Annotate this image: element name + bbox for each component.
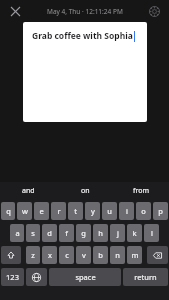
button[interactable]: Backspace [147, 246, 168, 264]
staticText: x [48, 250, 52, 260]
button[interactable]: return [123, 268, 168, 286]
staticText: t [74, 206, 77, 216]
button[interactable]: on [57, 182, 113, 200]
button[interactable]: Grab coffee with Sophia [23, 22, 147, 122]
button[interactable]: j [110, 224, 125, 242]
button[interactable]: n [110, 246, 125, 264]
staticText: and [22, 186, 35, 196]
button[interactable]: g [76, 224, 91, 242]
staticText: r [57, 206, 61, 216]
button[interactable]: e [34, 202, 49, 220]
button[interactable]: f [59, 224, 74, 242]
staticText: z [31, 250, 35, 260]
button[interactable]: from [113, 182, 169, 200]
button[interactable]: q [1, 202, 15, 220]
staticText: space [75, 272, 96, 282]
button[interactable]: Close [5, 1, 25, 21]
button[interactable]: z [26, 246, 40, 264]
button[interactable]: 123 [1, 268, 24, 286]
staticText: w [22, 206, 28, 216]
button[interactable]: v [76, 246, 91, 264]
button[interactable]: and [0, 182, 57, 200]
staticText: o [141, 206, 146, 216]
button[interactable]: i [119, 202, 134, 220]
button[interactable]: y [85, 202, 100, 220]
button[interactable]: w [17, 202, 32, 220]
button[interactable]: Shift [1, 246, 21, 264]
staticText: h [98, 228, 103, 238]
button[interactable]: l [144, 224, 159, 242]
staticText: on [81, 186, 90, 196]
staticText: n [115, 250, 120, 260]
staticText: 123 [6, 272, 19, 282]
staticText: e [39, 206, 44, 216]
button[interactable]: t [68, 202, 83, 220]
staticText: g [81, 228, 86, 238]
staticText: f [65, 228, 68, 238]
button[interactable]: d [42, 224, 57, 242]
button[interactable]: a [10, 224, 24, 242]
staticText: a [15, 228, 20, 238]
staticText: May 4, Thu · 12:11:24 PM [47, 7, 123, 16]
staticText: j [117, 228, 119, 238]
button[interactable]: r [51, 202, 66, 220]
staticText: k [132, 228, 137, 238]
staticText: v [82, 250, 86, 260]
button[interactable]: m [127, 246, 142, 264]
button[interactable]: u [102, 202, 117, 220]
staticText: m [131, 250, 139, 260]
button[interactable]: o [136, 202, 151, 220]
button[interactable]: k [127, 224, 142, 242]
staticText: return [134, 272, 157, 282]
button[interactable]: b [93, 246, 108, 264]
button[interactable]: x [42, 246, 57, 264]
staticText: u [107, 206, 112, 216]
button[interactable]: c [59, 246, 74, 264]
staticText: i [126, 206, 128, 216]
staticText: s [31, 228, 35, 238]
button[interactable]: h [93, 224, 108, 242]
staticText: d [47, 228, 52, 238]
staticText: p [158, 206, 163, 216]
button[interactable]: s [26, 224, 40, 242]
staticText: q [6, 206, 11, 216]
button[interactable]: Change keyboard [26, 268, 47, 286]
staticText: y [91, 206, 95, 216]
staticText: l [151, 228, 153, 238]
button[interactable]: p [153, 202, 168, 220]
button[interactable]: Settings [144, 1, 164, 21]
staticText: from [133, 186, 149, 196]
staticText: Grab coffee with Sophia [32, 30, 133, 42]
staticText: b [98, 250, 103, 260]
staticText: c [65, 250, 69, 260]
button[interactable]: space [49, 268, 121, 286]
